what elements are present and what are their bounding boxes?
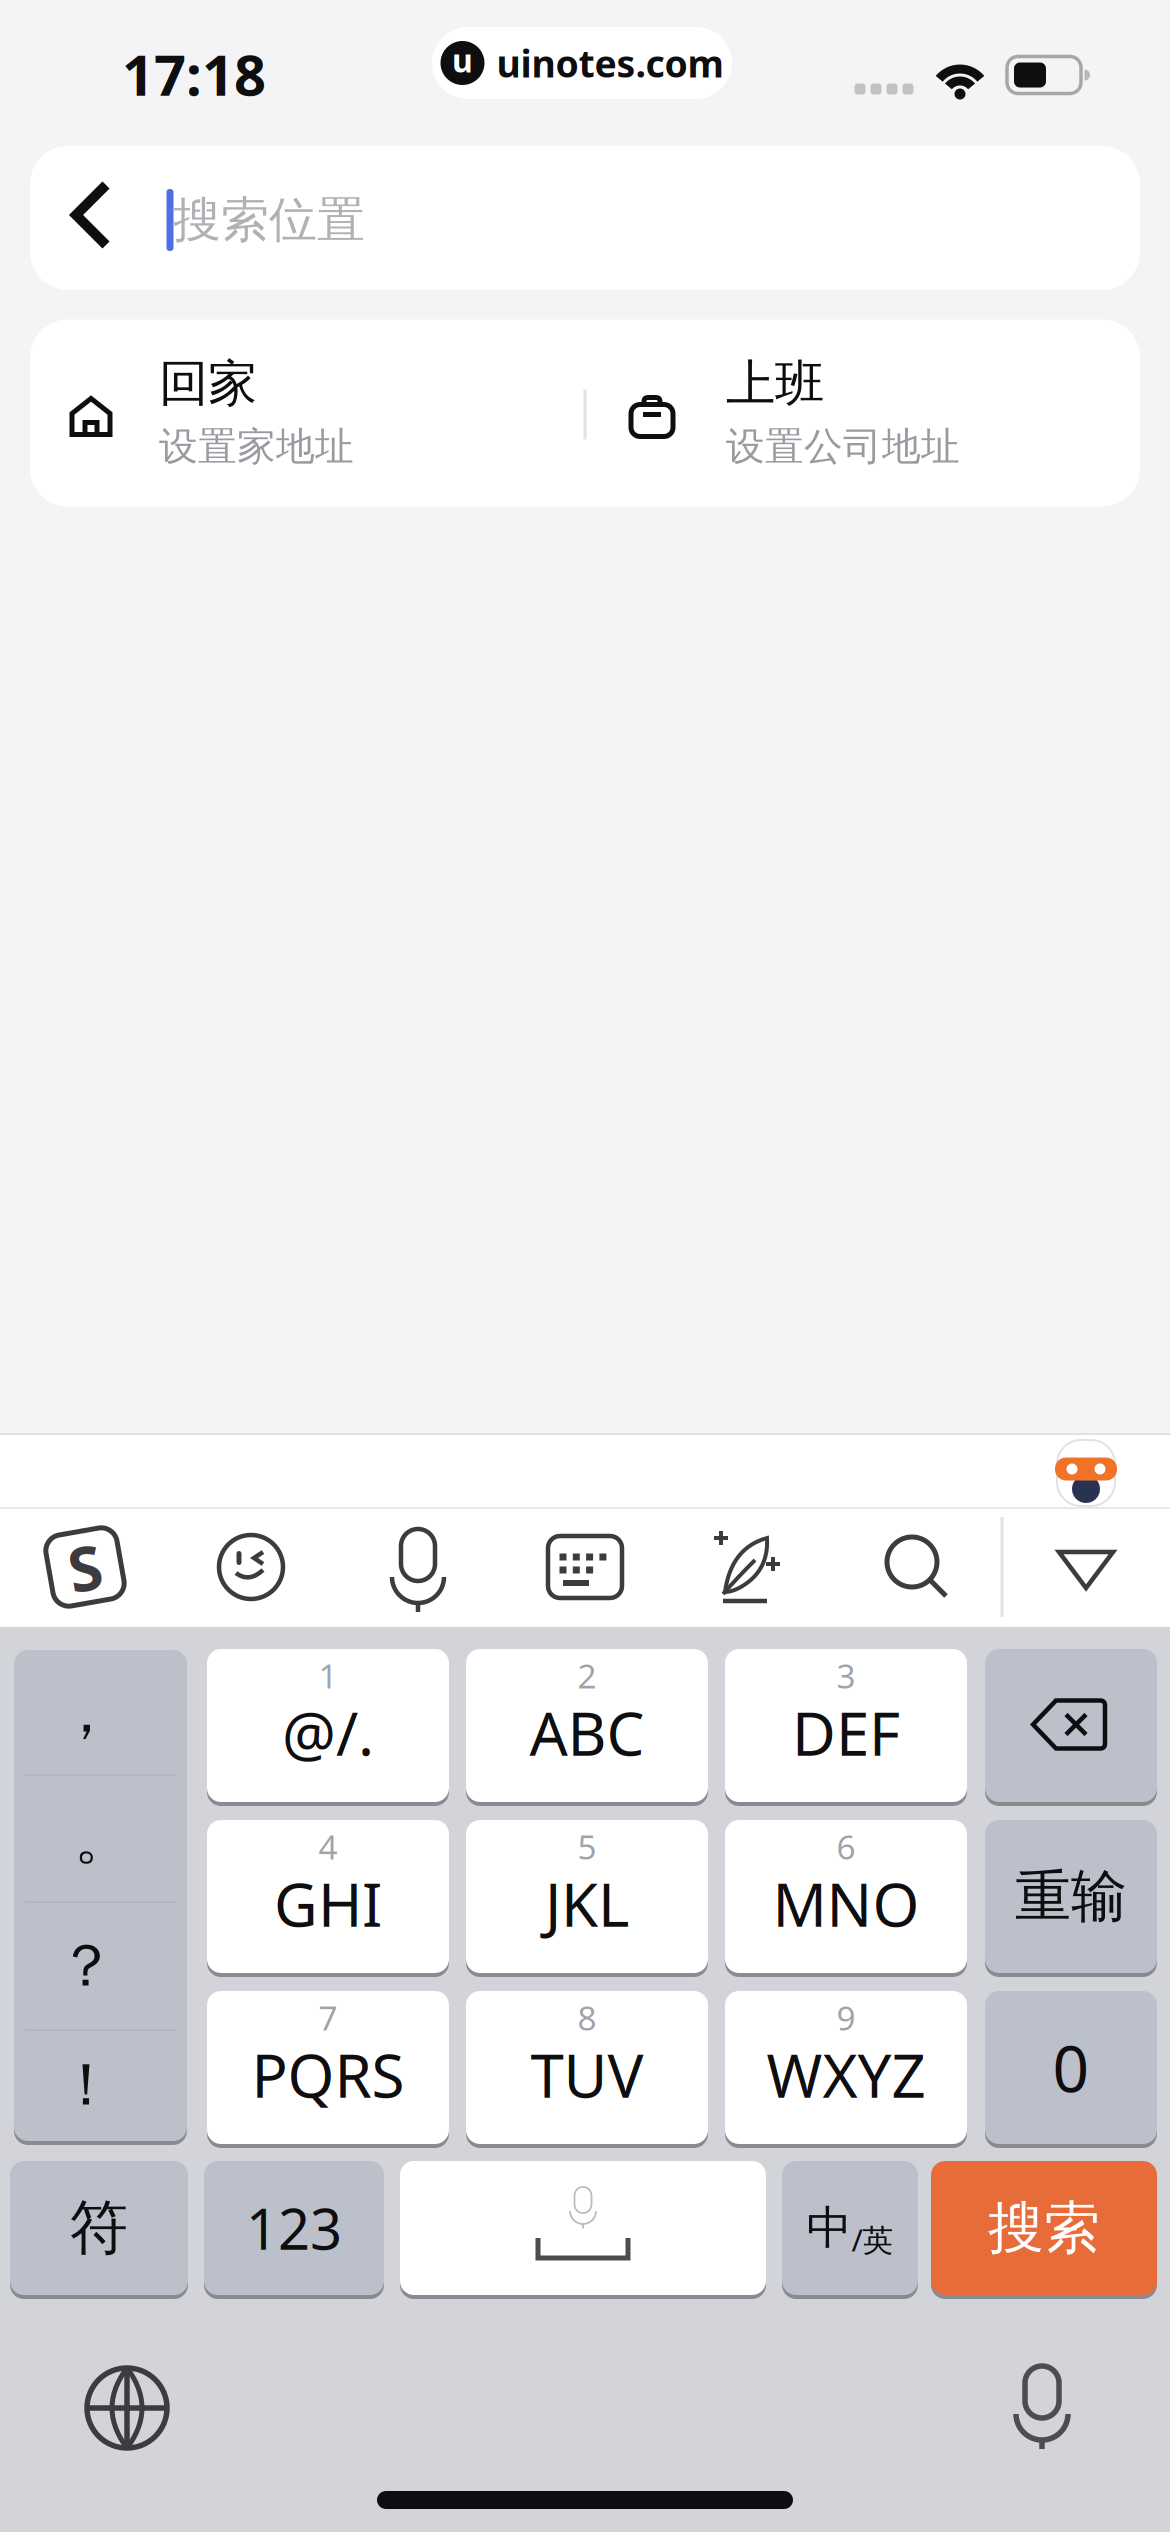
staticText: 3	[836, 1653, 855, 1698]
button[interactable]: ！	[14, 2030, 187, 2140]
button[interactable]: 搜索	[931, 2161, 1157, 2295]
button[interactable]: 中英切换	[782, 2161, 918, 2295]
staticText: 2	[577, 1653, 596, 1698]
staticText: 1	[318, 1653, 337, 1698]
staticText: ，	[57, 1676, 116, 1748]
button[interactable]: 。	[14, 1775, 187, 1901]
button[interactable]: ABC	[466, 1649, 708, 1802]
button[interactable]: 123	[204, 2161, 384, 2295]
button[interactable]: 语音输入	[1015, 2362, 1069, 2450]
staticText: 0	[1052, 2025, 1089, 2110]
button[interactable]: PQRS	[207, 1991, 449, 2144]
staticText: TUV	[530, 2035, 643, 2114]
button[interactable]: TUV	[466, 1991, 708, 2144]
button[interactable]: ，	[14, 1650, 187, 1774]
staticText: /英	[851, 2219, 893, 2260]
staticText: ？	[57, 1930, 116, 2002]
staticText: PQRS	[251, 2035, 404, 2114]
button[interactable]: MNO	[725, 1820, 967, 1973]
staticText: WXYZ	[766, 2035, 925, 2114]
staticText: 17:18	[122, 37, 266, 111]
staticText: 设置家地址	[159, 423, 354, 470]
staticText: 9	[836, 1995, 855, 2040]
staticText: JKL	[545, 1864, 629, 1943]
button[interactable]: 切换输入法	[84, 2365, 170, 2451]
staticText: 4	[318, 1824, 337, 1869]
button[interactable]: 重输	[985, 1820, 1157, 1973]
button[interactable]: 回家	[30, 319, 585, 506]
staticText: S	[68, 1526, 102, 1608]
staticText: 。	[74, 1802, 133, 1874]
staticText: 中	[806, 2200, 851, 2256]
staticText: GHI	[274, 1864, 382, 1943]
staticText: @/.	[282, 1693, 374, 1772]
button[interactable]: 空格	[400, 2161, 766, 2295]
staticText: ！	[57, 2049, 116, 2121]
staticText: 设置公司地址	[726, 423, 960, 470]
button[interactable]: JKL	[466, 1820, 708, 1973]
staticText: 123	[246, 2191, 342, 2265]
button[interactable]: 上班	[585, 319, 1140, 506]
button[interactable]: WXYZ	[725, 1991, 967, 2144]
button[interactable]: 返回	[37, 146, 147, 290]
button[interactable]: 智能写作	[711, 1531, 791, 1603]
button[interactable]: GHI	[207, 1820, 449, 1973]
button[interactable]: AI助手	[1055, 1436, 1117, 1510]
staticText: DEF	[792, 1693, 900, 1772]
staticText: 8	[577, 1995, 596, 2040]
button[interactable]: 搜狗	[35, 1517, 135, 1617]
staticText: 符	[69, 2192, 128, 2264]
button[interactable]: 符号	[10, 2161, 188, 2295]
staticText: 上班	[726, 353, 824, 414]
staticText: 重输	[1015, 1862, 1127, 1931]
button[interactable]: 表情	[211, 1527, 291, 1607]
staticText: 回家	[159, 353, 257, 414]
button[interactable]: 键盘布局	[546, 1535, 624, 1599]
staticText: uinotes.com	[496, 38, 723, 88]
staticText: 搜索位置	[173, 190, 365, 249]
button[interactable]: 收起键盘	[1056, 1549, 1116, 1591]
staticText: MNO	[772, 1864, 919, 1943]
staticText: ABC	[529, 1693, 644, 1772]
staticText: 7	[318, 1995, 337, 2040]
button[interactable]: 搜索	[884, 1534, 950, 1600]
button[interactable]: ？	[14, 1902, 187, 2029]
staticText: 5	[577, 1824, 596, 1869]
button[interactable]: DEF	[725, 1649, 967, 1802]
button[interactable]: 0	[985, 1991, 1157, 2144]
button[interactable]: @/.	[207, 1649, 449, 1802]
staticText: 6	[836, 1824, 855, 1869]
button[interactable]: 删除	[985, 1649, 1157, 1802]
button[interactable]: 语音	[391, 1525, 445, 1609]
staticText: u	[452, 39, 473, 81]
staticText: 搜索	[988, 2194, 1100, 2262]
